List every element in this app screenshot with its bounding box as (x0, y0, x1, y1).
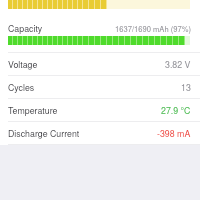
staticText: 27.9 °C (161, 104, 191, 117)
staticText: Cycles (8, 81, 35, 94)
staticText: 13 (181, 81, 191, 94)
button[interactable]: Capacity (0, 0, 200, 53)
staticText: Discharge Current (8, 127, 80, 140)
staticText: 3.82 V (165, 58, 191, 71)
button[interactable]: Voltage (0, 53, 200, 76)
staticText: -398 mA (157, 127, 191, 140)
button[interactable]: Cycles (0, 76, 200, 99)
staticText: Temperature (8, 104, 58, 117)
staticText: Capacity (8, 22, 43, 35)
staticText: 1637/1690 mAh (97%) (115, 23, 191, 34)
button[interactable]: Discharge Current (0, 122, 200, 145)
button[interactable]: Temperature (0, 99, 200, 122)
staticText: Voltage (8, 58, 38, 71)
